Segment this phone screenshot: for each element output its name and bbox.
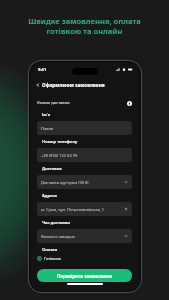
staticText: Оплата <box>42 247 58 253</box>
staticText: Час доставки <box>42 220 71 226</box>
button[interactable]: Готівкою <box>37 256 61 261</box>
staticText: Адреса <box>42 193 58 199</box>
staticText: Перевірити замовлення <box>57 273 112 279</box>
staticText: Умови доставки <box>37 100 70 106</box>
button[interactable]: Якомога швидше <box>37 229 132 243</box>
staticText: Оформлення замовлення <box>42 82 105 88</box>
staticText: Швидке замовлення, оплата готівкою та он… <box>6 16 163 36</box>
button[interactable]: Павло <box>37 121 132 135</box>
button[interactable]: Доставка кур'єром (90 ₴) <box>37 175 132 189</box>
button[interactable]: Back <box>34 81 42 89</box>
staticText: Доставка <box>42 166 62 172</box>
button[interactable]: Info <box>126 100 132 106</box>
button[interactable]: м. Суми, вул. Петропавлівська, 1 <box>37 202 132 216</box>
staticText: Готівкою <box>44 256 61 261</box>
button[interactable]: +38 (050) 122 00 99 <box>37 148 132 162</box>
staticText: Павло <box>41 126 54 131</box>
button[interactable]: Перевірити замовлення <box>37 269 132 282</box>
staticText: Якомога швидше <box>41 234 75 239</box>
staticText: м. Суми, вул. Петропавлівська, 1 <box>41 207 105 212</box>
staticText: Номер телефону <box>42 139 78 145</box>
staticText: +38 (050) 122 00 99 <box>41 153 78 158</box>
staticText: 9:41 <box>38 67 47 73</box>
staticText: Доставка кур'єром (90 ₴) <box>41 180 89 185</box>
staticText: Ім'я <box>42 112 51 118</box>
